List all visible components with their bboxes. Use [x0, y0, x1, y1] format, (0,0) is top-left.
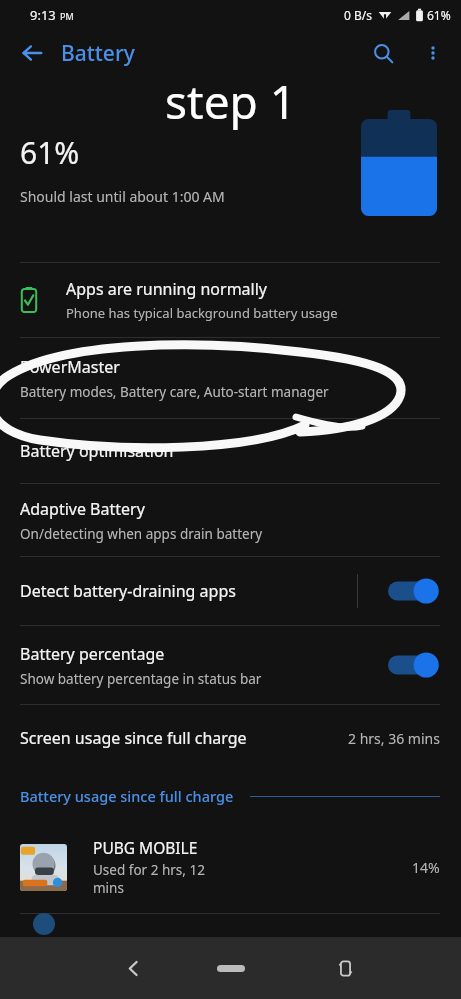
staticText: Detect battery-draining apps	[20, 580, 236, 602]
button[interactable]: Battery percentage	[0, 626, 461, 704]
staticText: Battery modes, Battery care, Auto-start …	[20, 383, 329, 401]
staticText: Battery usage since full charge	[20, 786, 234, 806]
staticText: PowerMaster	[20, 356, 120, 378]
staticText: Adaptive Battery	[20, 498, 145, 520]
button[interactable]: PowerMaster	[0, 338, 461, 418]
staticText: 14%	[412, 858, 440, 877]
button[interactable]: Back	[10, 31, 54, 75]
staticText: PM	[60, 10, 74, 22]
staticText: Used for 2 hrs, 12 mins	[93, 861, 205, 897]
button[interactable]: Search	[361, 31, 405, 75]
button[interactable]: PUBG MOBILE	[0, 821, 461, 913]
staticText: Screen usage since full charge	[20, 727, 348, 749]
staticText: On/detecting when apps drain battery	[20, 525, 263, 543]
staticText: PUBG MOBILE	[93, 837, 198, 858]
button[interactable]: More options	[411, 31, 455, 75]
staticText: 61%	[20, 132, 80, 173]
button[interactable]: Adaptive Battery	[0, 484, 461, 556]
staticText: Should last until about 1:00 AM	[20, 187, 225, 206]
staticText: Battery percentage	[20, 643, 165, 665]
button[interactable]: Battery percentage	[388, 648, 440, 682]
staticText: 9:13	[30, 6, 56, 24]
button[interactable]: Back	[110, 945, 156, 991]
button[interactable]: Detect battery-draining apps	[0, 557, 461, 625]
staticText: Battery optimisation	[20, 440, 174, 462]
staticText: 61%	[427, 7, 451, 23]
staticText: step 1	[165, 70, 297, 133]
button[interactable]: Apps are running normally	[0, 263, 461, 337]
button[interactable]: Battery optimisation	[0, 419, 461, 483]
staticText: 2 hrs, 36 mins	[348, 729, 440, 748]
button[interactable]: Detect battery-draining apps	[388, 574, 440, 608]
staticText: Apps are running normally	[66, 278, 267, 300]
staticText: Show battery percentage in status bar	[20, 670, 262, 688]
button[interactable]: Screen usage since full charge	[0, 705, 461, 771]
staticText: Phone has typical background battery usa…	[66, 304, 338, 322]
button[interactable]: Home	[203, 948, 259, 988]
button[interactable]: Rotate screen	[322, 945, 368, 991]
staticText: 0 B/s	[344, 7, 372, 23]
staticText: Battery	[61, 39, 135, 68]
